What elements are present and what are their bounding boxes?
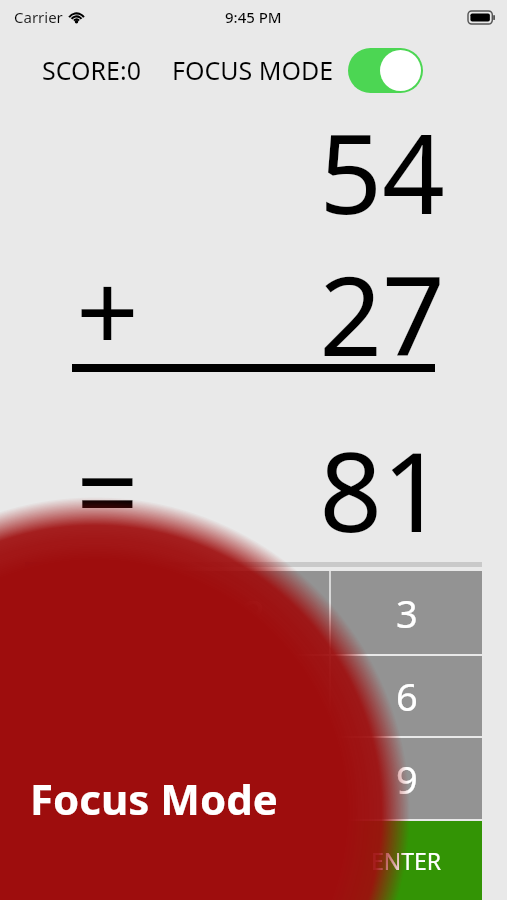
staticText: 54	[319, 96, 445, 246]
button[interactable]: 6	[331, 656, 482, 736]
staticText: ENTER	[371, 845, 442, 876]
button[interactable]: SCORE:0	[42, 53, 142, 87]
button[interactable]: 7	[25, 738, 176, 819]
button[interactable]: FOCUS MODE	[172, 53, 334, 87]
staticText: 9:45 PM	[225, 7, 282, 27]
staticText: 7	[90, 753, 112, 805]
staticText: 8	[243, 753, 265, 805]
button[interactable]: 2	[178, 571, 329, 654]
staticText: Focus Mode	[30, 770, 278, 827]
button[interactable]: ENTER	[331, 821, 482, 900]
button[interactable]: Focus Mode toggle, on	[348, 48, 423, 93]
staticText: +	[76, 234, 139, 384]
staticText: 9	[396, 753, 418, 805]
staticText: Carrier	[14, 7, 63, 27]
staticText: 27	[319, 238, 445, 388]
button[interactable]: 9	[331, 738, 482, 819]
button[interactable]: 8	[178, 738, 329, 819]
staticText: 6	[396, 670, 418, 722]
staticText: 81	[319, 414, 445, 556]
staticText: 3	[396, 587, 418, 639]
staticText: =	[76, 414, 139, 556]
button[interactable]: 3	[331, 571, 482, 654]
